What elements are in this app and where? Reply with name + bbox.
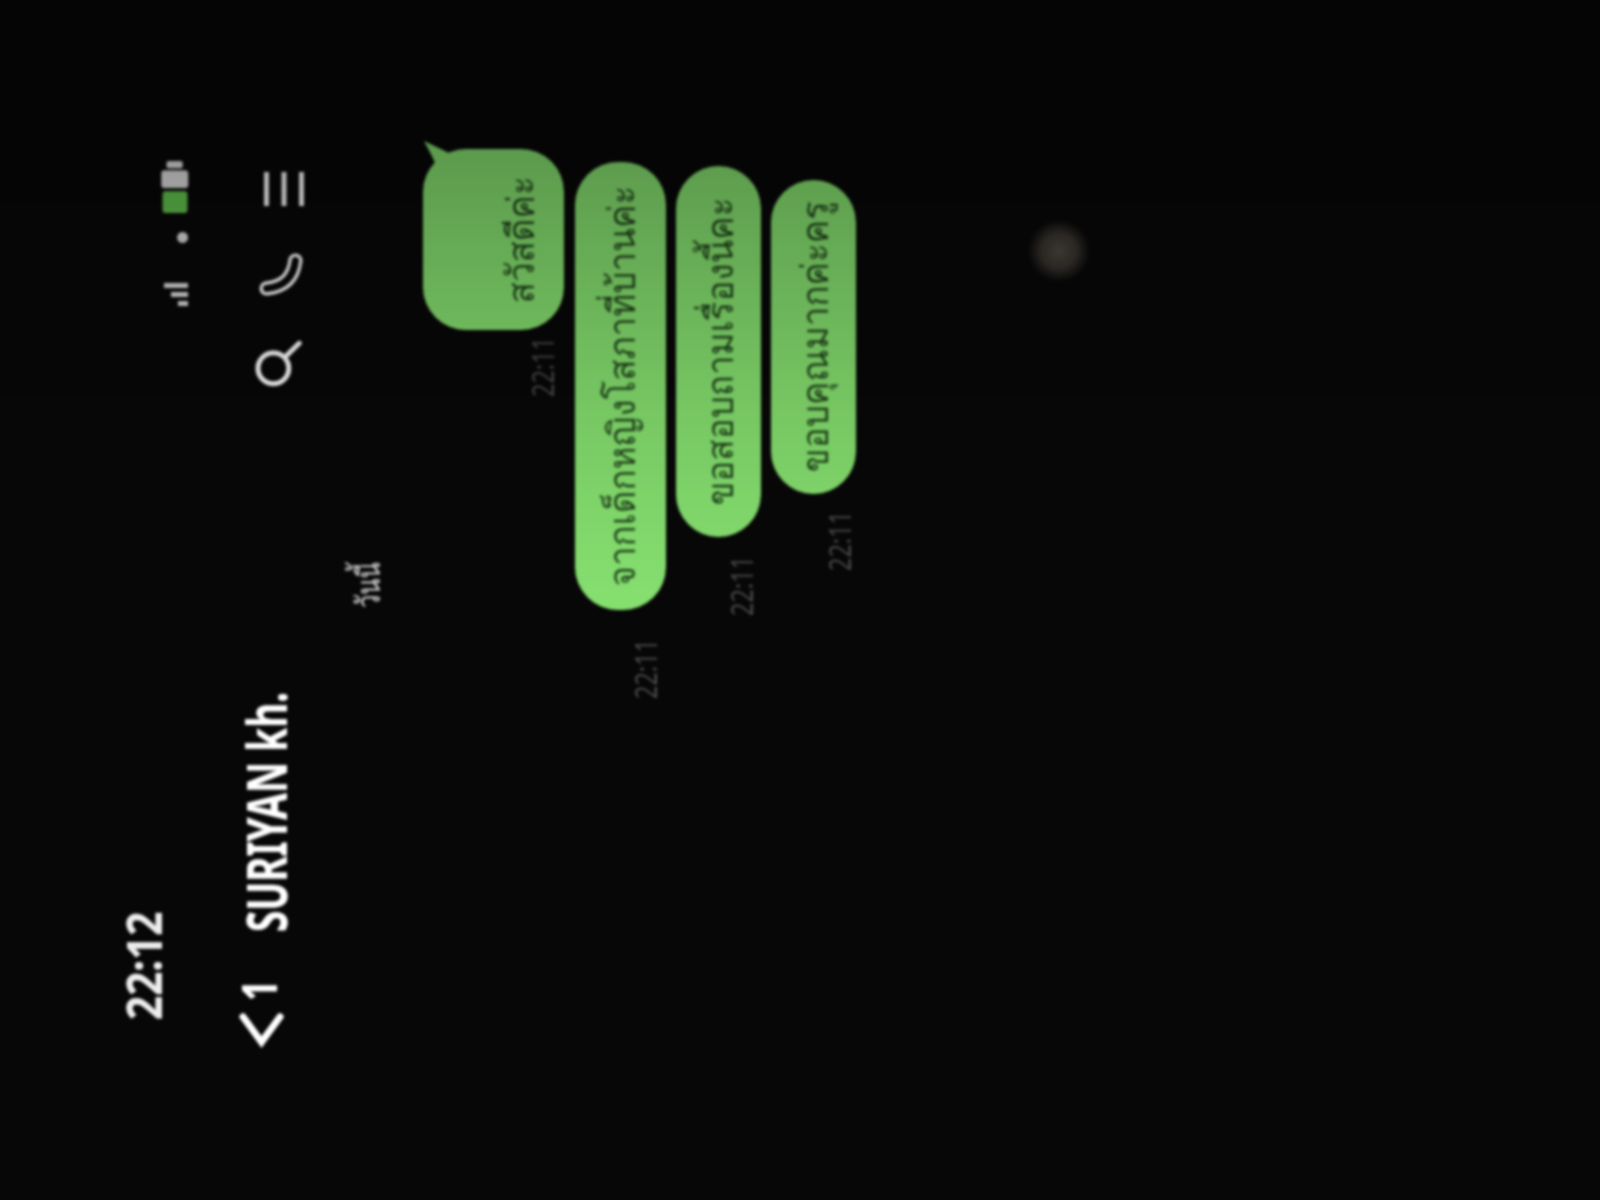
button[interactable]: Back bbox=[219, 988, 303, 1072]
button[interactable]: Search bbox=[236, 321, 320, 405]
staticText: ขอสอบถามเรื่องนี้คะ bbox=[689, 197, 749, 506]
staticText: 22:11 bbox=[819, 511, 860, 571]
staticText: 22:12 bbox=[111, 911, 176, 1020]
button[interactable]: Call bbox=[239, 233, 323, 317]
staticText: สวัสดีค่ะ bbox=[490, 176, 550, 303]
staticText: 22:11 bbox=[721, 556, 762, 616]
staticText: ขอบคุณมากค่ะครู bbox=[784, 201, 844, 472]
button[interactable]: ขอบคุณมากค่ะครู bbox=[771, 180, 856, 494]
button[interactable]: จากเด็กหญิงโสภาที่บ้านค่ะ bbox=[575, 162, 666, 610]
staticText: 22:11 bbox=[522, 337, 563, 397]
staticText: SURIYAN kh. bbox=[228, 692, 303, 932]
button[interactable]: สวัสดีค่ะ bbox=[423, 149, 564, 330]
staticText: 22:11 bbox=[625, 639, 666, 699]
staticText: จากเด็กหญิงโสภาที่บ้านค่ะ bbox=[591, 185, 651, 586]
button[interactable]: ขอสอบถามเรื่องนี้คะ bbox=[676, 166, 761, 537]
staticText: วันนี้ bbox=[342, 562, 394, 608]
staticText: 1 bbox=[226, 979, 291, 1001]
button[interactable]: Menu bbox=[242, 147, 326, 231]
